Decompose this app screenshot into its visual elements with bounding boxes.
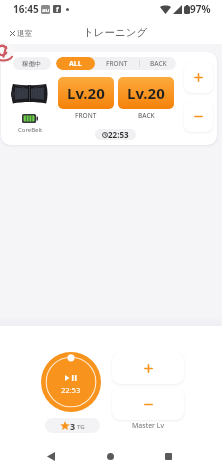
button[interactable]: 退室 <box>8 27 34 40</box>
staticText: f <box>56 5 59 13</box>
staticText: Lv.20 <box>67 83 105 103</box>
staticText: BACK <box>150 59 167 68</box>
button[interactable]: BACK <box>140 57 176 70</box>
button[interactable]: Back <box>37 442 65 470</box>
button[interactable]: ALL <box>56 57 95 70</box>
staticText: FRONT <box>75 111 97 120</box>
button[interactable]: Lv.20 <box>118 77 174 109</box>
staticText: TG <box>77 423 85 431</box>
button[interactable]: 3 <box>45 418 100 433</box>
button[interactable]: Decrease master level <box>112 388 184 420</box>
button[interactable]: Decrease level <box>184 101 213 132</box>
staticText: トレーニング <box>83 26 148 39</box>
staticText: FRONT <box>106 59 128 68</box>
staticText: 稼働中 <box>22 60 42 68</box>
button[interactable]: Lv.20 <box>58 77 114 109</box>
staticText: Lv.20 <box>127 83 165 103</box>
staticText: Master Lv <box>132 421 165 431</box>
staticText: 97% <box>190 2 211 16</box>
staticText: 退室 <box>17 29 32 38</box>
button[interactable]: Recents <box>154 442 182 470</box>
staticText: 22:53 <box>61 385 81 395</box>
staticText: CoreBelt <box>18 126 43 134</box>
staticText: ALL <box>69 59 82 69</box>
button[interactable]: FRONT <box>95 57 139 70</box>
staticText: 22:53 <box>108 129 129 140</box>
staticText: 16:45 <box>13 2 39 16</box>
staticText: 3 <box>70 420 76 432</box>
button[interactable]: Home <box>96 442 124 470</box>
button[interactable]: Increase level <box>184 62 213 93</box>
button[interactable]: Pause training <box>41 352 101 412</box>
button[interactable]: Increase master level <box>112 352 184 384</box>
staticText: au <box>42 6 50 14</box>
staticText: BACK <box>138 111 155 120</box>
